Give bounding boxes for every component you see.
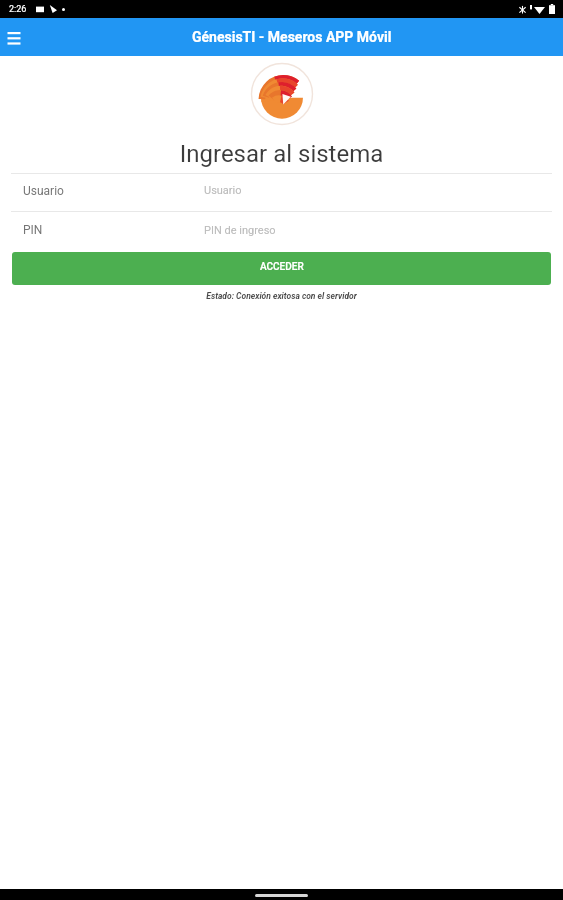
staticText: Usuario [204, 184, 242, 197]
button[interactable]: Open navigation menu [6, 29, 22, 45]
button[interactable]: PIN [0, 212, 563, 249]
staticText: Ingresar al sistema [0, 140, 563, 168]
staticText: PIN de ingreso [204, 224, 276, 237]
staticText: GénesisTI - Meseros APP Móvil [192, 29, 392, 45]
button[interactable]: Usuario [0, 174, 563, 211]
button[interactable]: ACCEDER [12, 252, 551, 285]
staticText: 2:26 [9, 4, 27, 15]
staticText: ACCEDER [260, 261, 304, 273]
staticText: Usuario [23, 184, 64, 198]
staticText: Estado: Conexión exitosa con el servidor [0, 291, 563, 301]
staticText: PIN [23, 223, 43, 237]
